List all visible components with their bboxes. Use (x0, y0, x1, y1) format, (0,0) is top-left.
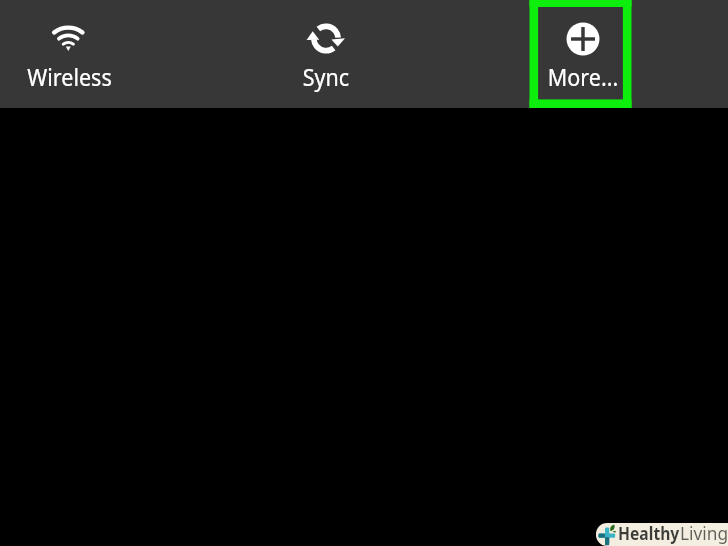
button[interactable]: Sync (275, 0, 377, 108)
button[interactable]: More options (532, 0, 634, 108)
staticText: Wireless (27, 61, 112, 92)
button[interactable]: Wireless (18, 0, 120, 108)
staticText: Healthy (618, 523, 680, 544)
staticText: Sync (303, 61, 349, 92)
staticText: Living (680, 523, 728, 544)
staticText: More... (547, 61, 619, 92)
